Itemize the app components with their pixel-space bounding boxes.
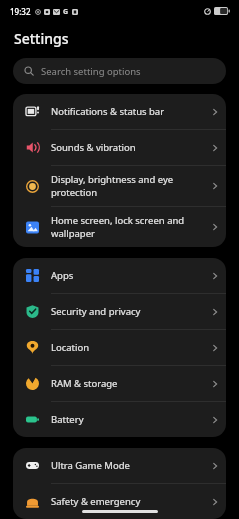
- staticText: Battery: [51, 413, 198, 426]
- other: Open Ultra Game Mode: [211, 462, 219, 470]
- staticText: Search setting options: [41, 65, 141, 78]
- staticText: Apps: [51, 269, 198, 282]
- other: Open Display, brightness and eye protect…: [211, 182, 219, 190]
- button[interactable]: Home screen, lock screen and wallpaper: [13, 207, 226, 247]
- button[interactable]: Battery: [13, 402, 226, 437]
- button[interactable]: Sounds & vibration: [13, 130, 226, 165]
- other: Open RAM & storage: [211, 380, 219, 388]
- staticText: Ultra Game Mode: [51, 459, 198, 472]
- staticText: RAM & storage: [51, 377, 198, 390]
- button[interactable]: Apps: [13, 258, 226, 293]
- button[interactable]: Display, brightness and eye protection: [13, 166, 226, 206]
- button[interactable]: Search setting options: [13, 58, 226, 84]
- staticText: Home screen, lock screen and wallpaper: [51, 214, 198, 240]
- other: Open Battery: [211, 416, 219, 424]
- button[interactable]: Ultra Game Mode: [13, 448, 226, 483]
- other: Open Apps: [211, 272, 219, 280]
- button[interactable]: Safety & emergency: [13, 484, 226, 519]
- staticText: Display, brightness and eye protection: [51, 173, 198, 199]
- staticText: Security and privacy: [51, 305, 198, 318]
- other: Open Security and privacy: [211, 308, 219, 316]
- other: Open Notifications & status bar: [211, 108, 219, 116]
- button[interactable]: RAM & storage: [13, 366, 226, 401]
- button[interactable]: Security and privacy: [13, 294, 226, 329]
- staticText: G: [63, 7, 69, 17]
- staticText: 19:32: [10, 6, 31, 17]
- staticText: Settings: [14, 29, 69, 48]
- other: Open Sounds & vibration: [211, 144, 219, 152]
- staticText: Sounds & vibration: [51, 141, 198, 154]
- other: Open Safety & emergency: [211, 498, 219, 506]
- staticText: Location: [51, 341, 198, 354]
- other: Open Home screen, lock screen and wallpa…: [211, 223, 219, 231]
- staticText: Notifications & status bar: [51, 105, 198, 118]
- staticText: Safety & emergency: [51, 495, 198, 508]
- other: Open Location: [211, 344, 219, 352]
- button[interactable]: Notifications & status bar: [13, 94, 226, 129]
- button[interactable]: Location: [13, 330, 226, 365]
